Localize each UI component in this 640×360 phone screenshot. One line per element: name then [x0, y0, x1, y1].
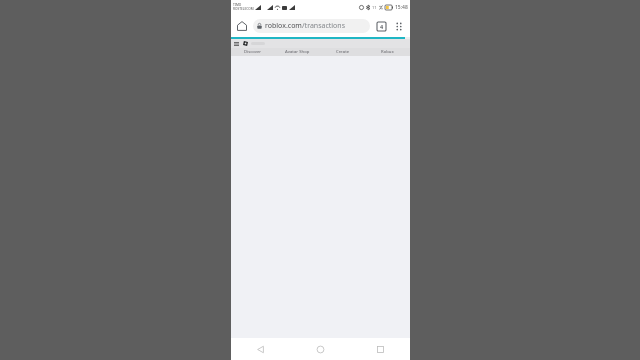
staticText: Avatar Shop	[285, 49, 310, 55]
staticText: Discover	[244, 49, 262, 55]
staticText: ROSTELECOM	[233, 7, 254, 11]
button[interactable]: roblox.com	[253, 19, 370, 33]
button[interactable]: Menu	[233, 40, 240, 47]
button[interactable]: Back	[231, 338, 290, 360]
staticText: roblox.com	[265, 21, 302, 31]
button[interactable]: Discover	[231, 48, 275, 56]
button[interactable]: Create	[320, 48, 365, 56]
staticText: 15:48	[395, 4, 408, 11]
button[interactable]: More options	[391, 18, 407, 34]
button[interactable]: Avatar Shop	[275, 48, 320, 56]
staticText: 4	[380, 23, 384, 30]
button[interactable]: Tabs	[373, 18, 389, 34]
staticText: 11	[372, 5, 377, 10]
staticText: Robux	[381, 49, 394, 55]
button[interactable]: Robux	[365, 48, 410, 56]
staticText: TIMO	[233, 3, 242, 7]
button[interactable]: Home	[290, 338, 350, 360]
button[interactable]: Recent apps	[350, 338, 410, 360]
button[interactable]: Home	[234, 18, 250, 34]
button[interactable]: Roblox home	[242, 40, 249, 47]
staticText: /transactions	[302, 21, 346, 31]
staticText: Create	[336, 49, 350, 55]
